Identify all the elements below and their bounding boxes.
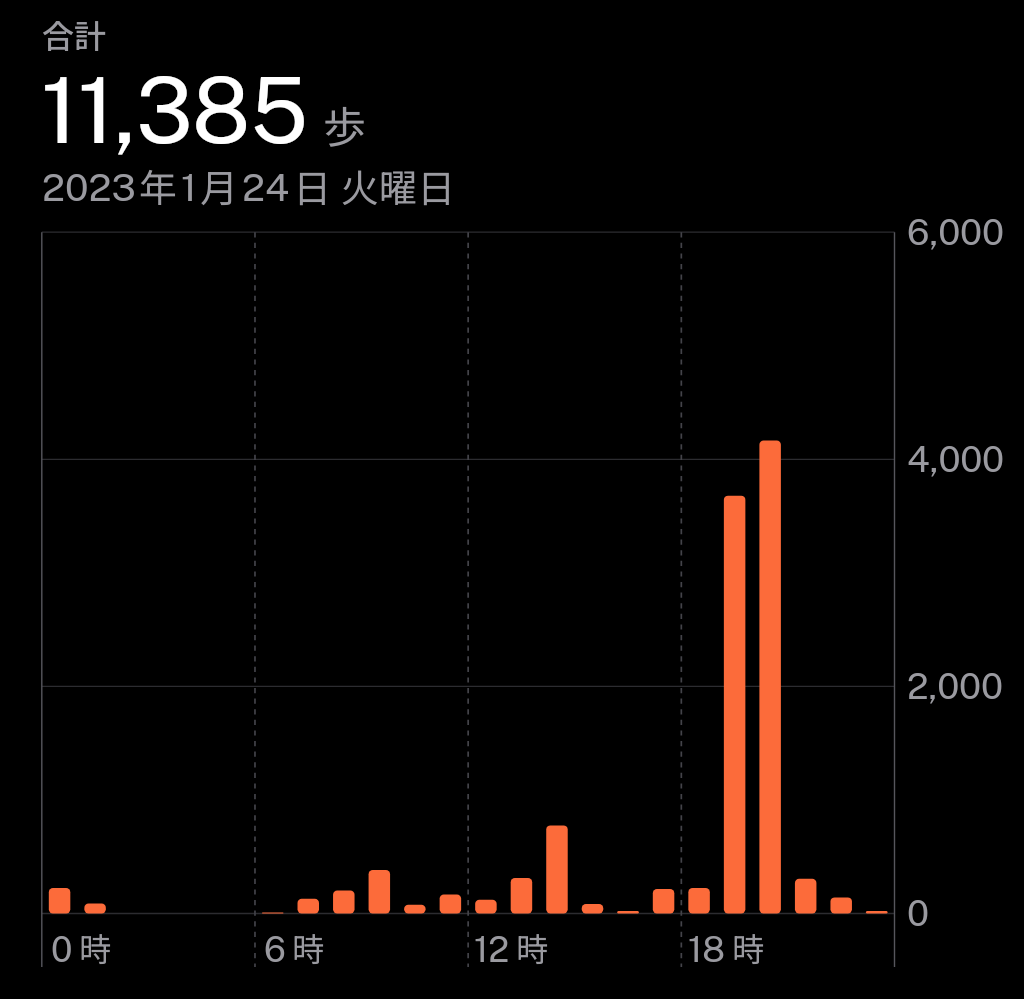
staticText: 2023 — [42, 164, 136, 209]
staticText: 0 — [51, 929, 73, 970]
staticText: 1 — [181, 164, 197, 209]
staticText: 合計 — [42, 11, 107, 57]
staticText: 6,000 — [907, 211, 1004, 253]
staticText: 年 — [139, 158, 178, 213]
staticText: 0 — [907, 892, 930, 934]
staticText: 18 — [688, 929, 726, 970]
staticText: 2,000 — [907, 665, 1004, 707]
button[interactable]: Hourly step count chart — [0, 0, 1024, 999]
staticText: 時 — [516, 924, 549, 970]
staticText: 11,385 — [41, 57, 309, 163]
staticText: 時 — [732, 924, 765, 970]
staticText: 24 — [242, 164, 290, 209]
staticText: 6 — [264, 929, 286, 970]
staticText: 時 — [292, 924, 325, 970]
staticText: 歩 — [323, 93, 366, 155]
button[interactable]: 合計 — [42, 11, 107, 57]
staticText: 12 — [474, 929, 510, 970]
staticText: 日 — [293, 158, 332, 213]
staticText: 火曜日 — [341, 158, 456, 213]
staticText: 時 — [79, 924, 112, 970]
staticText: 4,000 — [907, 438, 1005, 480]
button[interactable]: 2023 — [42, 158, 456, 213]
staticText: 月 — [200, 158, 239, 213]
